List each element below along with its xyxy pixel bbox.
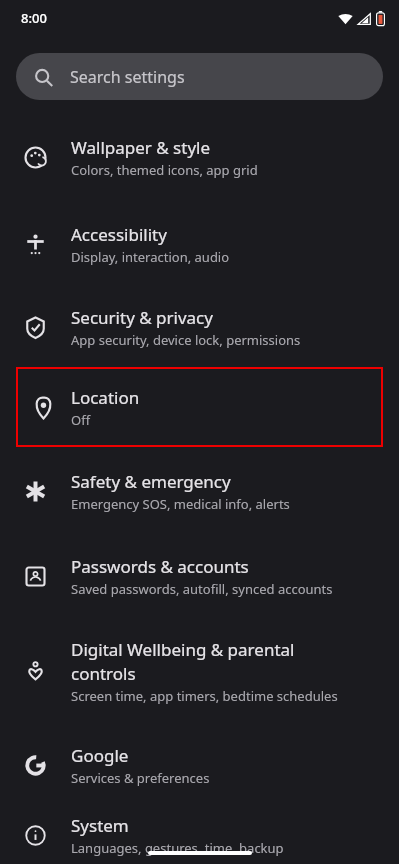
staticText: Passwords & accounts bbox=[71, 555, 249, 578]
button[interactable]: Security & privacy bbox=[0, 287, 399, 367]
staticText: Security & privacy bbox=[71, 306, 213, 329]
staticText: Services & preferences bbox=[71, 769, 210, 787]
staticText: Google bbox=[71, 744, 129, 767]
staticText: Languages, gestures, time, backup bbox=[71, 839, 284, 857]
button[interactable]: System bbox=[0, 806, 399, 864]
button[interactable]: Safety & emergency bbox=[0, 447, 399, 535]
button[interactable]: Accessibility bbox=[0, 201, 399, 287]
button[interactable]: Search settings bbox=[16, 53, 383, 100]
staticText: Display, interaction, audio bbox=[71, 248, 230, 266]
staticText: Accessibility bbox=[71, 223, 167, 246]
staticText: Search settings bbox=[70, 66, 185, 88]
button[interactable]: Google bbox=[0, 724, 399, 806]
staticText: Safety & emergency bbox=[71, 470, 231, 493]
staticText: Screen time, app timers, bedtime schedul… bbox=[71, 687, 338, 705]
staticText: Off bbox=[71, 411, 91, 429]
button[interactable]: Wallpaper & style bbox=[0, 114, 399, 201]
button[interactable]: Digital Wellbeing & parental controls bbox=[0, 618, 399, 724]
staticText: System bbox=[71, 814, 129, 837]
staticText: Colors, themed icons, app grid bbox=[71, 161, 258, 179]
staticText: Location bbox=[71, 386, 140, 409]
button[interactable]: Passwords & accounts bbox=[0, 535, 399, 618]
staticText: Emergency SOS, medical info, alerts bbox=[71, 495, 290, 513]
staticText: Digital Wellbeing & parental controls bbox=[71, 638, 359, 685]
button[interactable]: Location bbox=[16, 367, 383, 447]
staticText: Saved passwords, autofill, synced accoun… bbox=[71, 580, 333, 598]
staticText: 8:00 bbox=[21, 9, 47, 27]
staticText: App security, device lock, permissions bbox=[71, 331, 301, 349]
staticText: Wallpaper & style bbox=[71, 136, 211, 159]
